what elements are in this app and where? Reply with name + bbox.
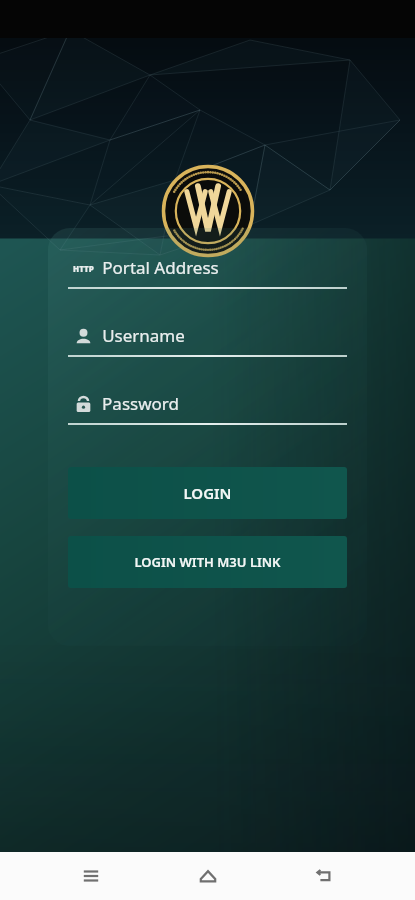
button[interactable]: LOGIN [68,467,347,519]
staticText: Portal Address [102,256,219,279]
button[interactable]: Back [298,852,350,900]
staticText: Username [102,324,185,347]
staticText: LOGIN WITH M3U LINK [134,553,281,571]
button[interactable]: LOGIN WITH M3U LINK [68,536,347,588]
button[interactable]: Recent apps [65,852,117,900]
staticText: LOGIN [183,483,232,503]
button[interactable]: Username [68,324,347,357]
button[interactable]: HTTP [68,256,347,289]
staticText: Password [102,392,179,415]
staticText: HTTP [73,263,94,274]
button[interactable]: Home [182,852,234,900]
button[interactable]: Password [68,392,347,425]
